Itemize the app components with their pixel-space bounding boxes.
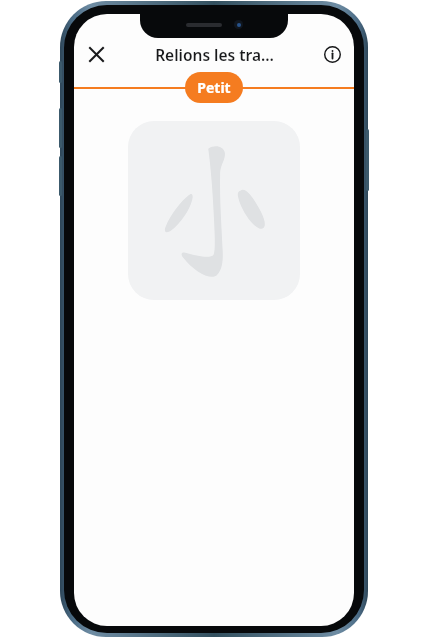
- button[interactable]: Fermer: [81, 39, 111, 69]
- staticText: Relions les tra…: [155, 44, 274, 65]
- staticText: Petit: [197, 78, 231, 97]
- button[interactable]: Informations: [318, 40, 346, 68]
- button[interactable]: [128, 121, 300, 300]
- button[interactable]: Petit: [185, 72, 243, 103]
